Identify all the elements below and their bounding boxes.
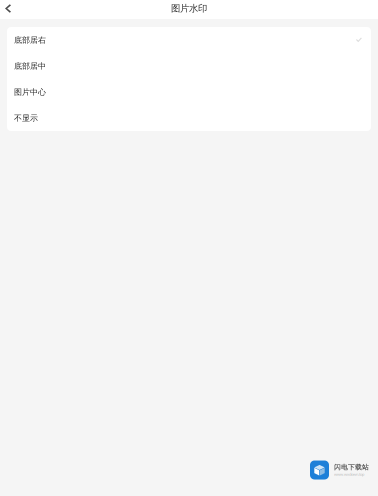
staticText: 底部居中 bbox=[14, 61, 46, 71]
staticText: 底部居右 bbox=[14, 35, 46, 45]
staticText: 图片中心 bbox=[14, 87, 46, 97]
button[interactable]: Back bbox=[0, 0, 16, 19]
button[interactable]: 图片中心 bbox=[7, 79, 371, 105]
staticText: www.wxdown.top bbox=[334, 471, 364, 477]
button[interactable]: 底部居中 bbox=[7, 53, 371, 79]
staticText: 图片水印 bbox=[171, 3, 207, 14]
staticText: 闪电下载站 bbox=[334, 463, 369, 471]
button[interactable]: 不显示 bbox=[7, 105, 371, 131]
staticText: 不显示 bbox=[14, 113, 38, 123]
button[interactable]: 底部居右 bbox=[7, 27, 371, 53]
